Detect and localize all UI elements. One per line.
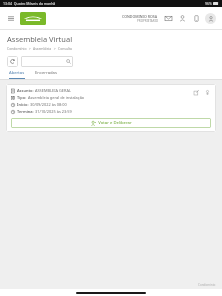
staticText: ASSEMBLEIA GERAL (35, 88, 71, 93)
button[interactable]: Aplicativo (191, 13, 201, 23)
button[interactable]: Pesquisar (21, 56, 73, 67)
staticText: Assembleia (33, 46, 52, 51)
button[interactable]: Assunto: (6, 84, 216, 132)
staticText: Início: (17, 102, 30, 107)
button[interactable]: Menu (6, 13, 16, 23)
staticText: Termina: (17, 109, 35, 114)
staticText: CONDOMINIO ROSA (122, 14, 158, 19)
staticText: 30/09/2022 às 08:00 (30, 102, 67, 107)
button[interactable]: Abertas (7, 70, 27, 79)
staticText: PROPRIETARIO (137, 19, 158, 23)
staticText: Abertas (9, 70, 25, 76)
button[interactable]: Logo (20, 12, 46, 25)
staticText: Assembleia geral de instalação (28, 95, 85, 100)
staticText: Consulta (58, 46, 73, 51)
staticText: Assembleia Virtual (7, 34, 73, 44)
button[interactable]: Encerradas (33, 70, 59, 79)
button[interactable]: Conta (205, 13, 216, 24)
staticText: 96% (205, 1, 212, 6)
staticText: Condominio (198, 283, 216, 287)
button[interactable]: Perfil (177, 13, 187, 23)
staticText: > (27, 46, 33, 51)
button[interactable]: Votar e Deliberar (11, 118, 211, 128)
staticText: Condomínio (7, 46, 27, 51)
button[interactable]: Mensagens (163, 13, 173, 23)
staticText: 31/10/2025 às 23:59 (35, 109, 72, 114)
button[interactable]: Abrir (192, 88, 200, 96)
staticText: Votar e Deliberar (98, 120, 132, 126)
button[interactable]: Mais opções (203, 88, 211, 96)
staticText: Assunto: (17, 88, 35, 93)
staticText: Encerradas (35, 70, 57, 76)
staticText: 13:04 Quatro Móveis da manhã (3, 1, 56, 6)
button[interactable]: Atualizar (7, 56, 18, 67)
staticText: > (52, 46, 58, 51)
staticText: Tipo: (17, 95, 28, 100)
other: Pesquisar (66, 59, 71, 64)
